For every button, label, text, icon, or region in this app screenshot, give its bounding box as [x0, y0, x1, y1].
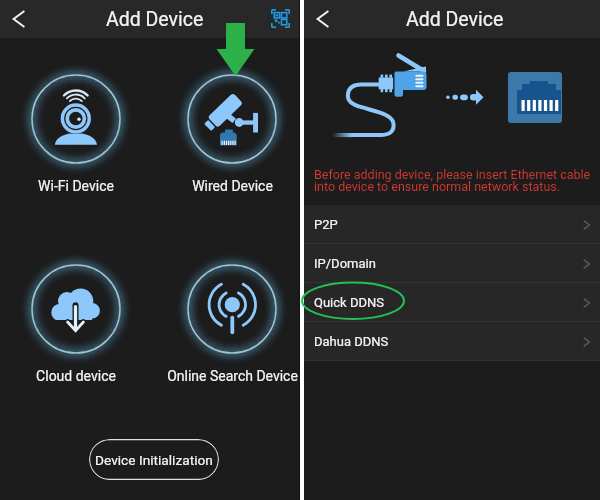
- button[interactable]: Dahua DDNS: [304, 322, 600, 361]
- button[interactable]: Back: [304, 0, 344, 38]
- staticText: Wi-Fi Device: [38, 178, 114, 194]
- staticText: Dahua DDNS: [314, 334, 389, 349]
- staticText: Device Initialization: [95, 452, 213, 468]
- button[interactable]: Wired Device: [175, 62, 289, 176]
- button[interactable]: Scan QR code: [261, 0, 299, 38]
- staticText: Online Search Device: [167, 368, 298, 384]
- staticText: Add Device: [406, 8, 504, 31]
- button[interactable]: Online Search Device: [175, 252, 289, 366]
- button[interactable]: Back: [0, 0, 40, 38]
- button[interactable]: Device Initialization: [89, 439, 219, 480]
- button[interactable]: Cloud device: [19, 252, 133, 366]
- button[interactable]: Quick DDNS: [304, 283, 600, 322]
- button[interactable]: Wi-Fi Device: [19, 62, 133, 176]
- staticText: Quick DDNS: [314, 295, 384, 310]
- staticText: Cloud device: [36, 368, 116, 384]
- staticText: Add Device: [106, 8, 204, 31]
- staticText: IP/Domain: [314, 256, 376, 271]
- button[interactable]: P2P: [304, 205, 600, 244]
- staticText: P2P: [314, 217, 338, 232]
- button[interactable]: IP/Domain: [304, 244, 600, 283]
- staticText: Before adding device, please insert Ethe…: [314, 167, 600, 194]
- staticText: Wired Device: [192, 178, 273, 194]
